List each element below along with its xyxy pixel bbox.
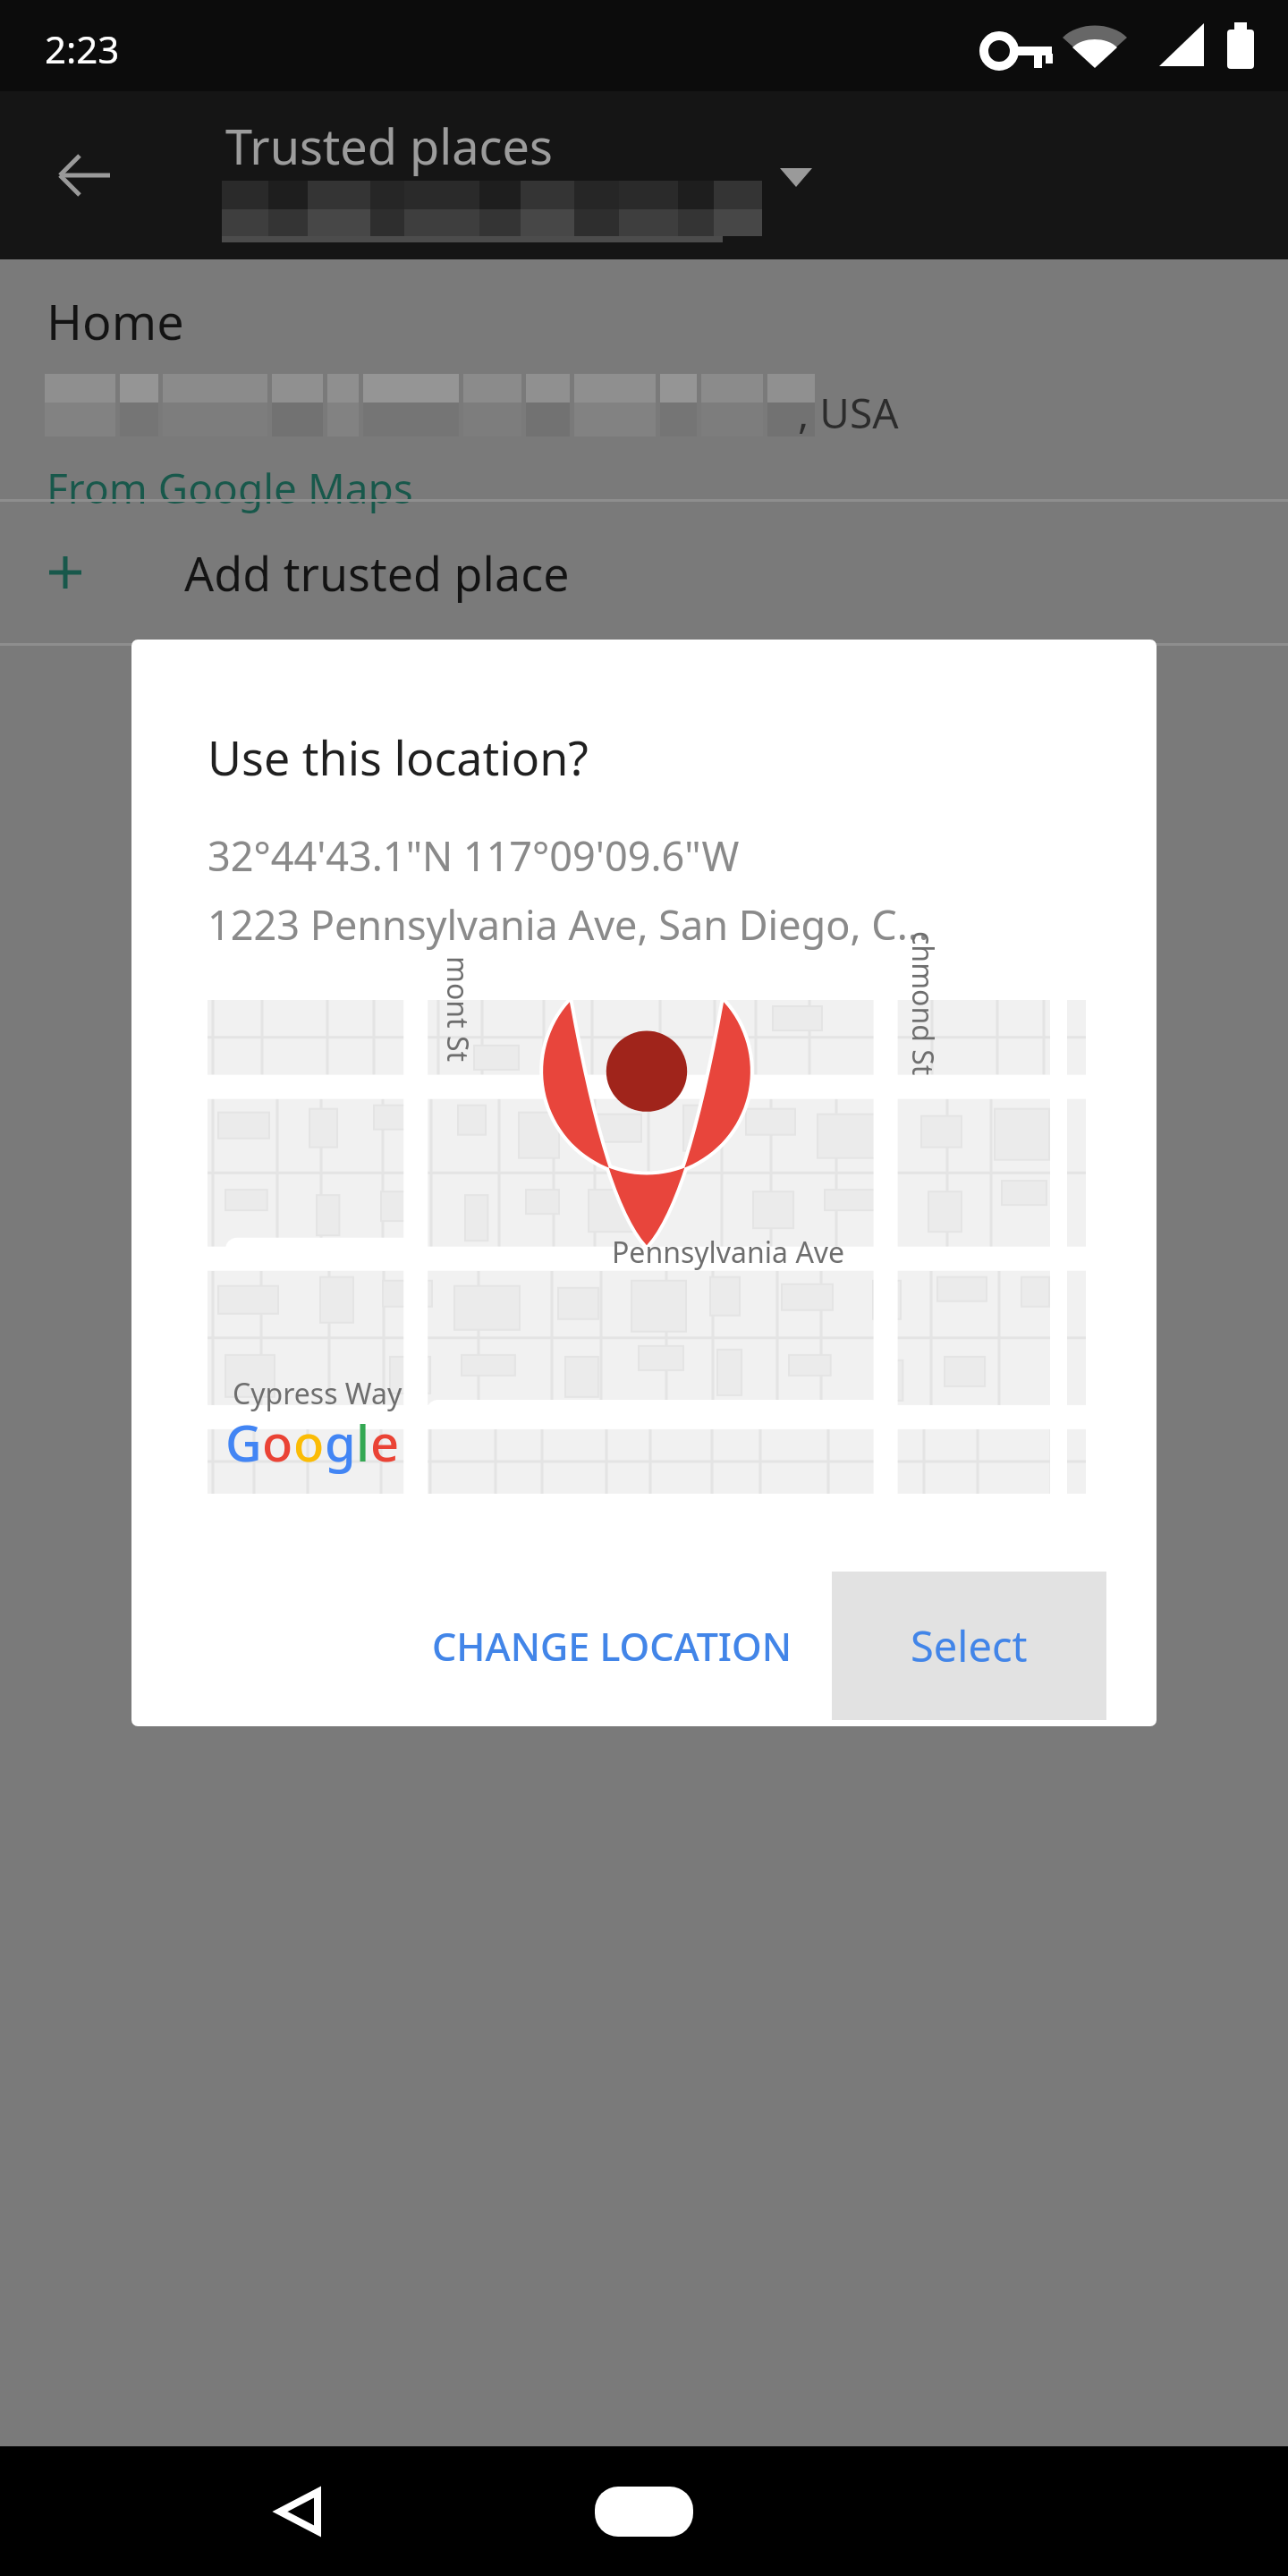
staticText: 32°44'43.1"N 117°09'09.6"W — [208, 828, 740, 883]
button[interactable]: Map preview — [208, 1000, 1086, 1494]
staticText: e — [370, 1408, 400, 1476]
button[interactable]: Select — [832, 1572, 1106, 1720]
staticText: CHANGE LOCATION — [432, 1620, 792, 1673]
staticText: Home — [47, 288, 184, 354]
button[interactable]: CHANGE LOCATION — [409, 1571, 816, 1721]
staticText: Pennsylvania Ave — [612, 1233, 845, 1272]
button[interactable]: Back — [240, 2453, 356, 2570]
button[interactable]: Home — [0, 259, 1288, 499]
staticText: Cypress Way — [233, 1374, 402, 1413]
staticText: Use this location? — [208, 725, 589, 789]
staticText: Select — [911, 1617, 1028, 1674]
staticText: mont St — [438, 956, 478, 1063]
button[interactable]: Change account — [760, 141, 832, 213]
button[interactable]: Add trusted place — [0, 502, 1288, 643]
staticText: g — [325, 1408, 356, 1476]
staticText: Add trusted place — [184, 541, 570, 605]
staticText: 2:23 — [45, 23, 120, 74]
button[interactable]: Home — [572, 2471, 716, 2552]
staticText: Trusted places — [225, 113, 553, 179]
staticText: From Google Maps — [47, 460, 413, 516]
staticText: G — [225, 1408, 262, 1476]
staticText: chmond St — [903, 931, 943, 1076]
button[interactable]: Back — [39, 131, 129, 220]
staticText: o — [262, 1408, 293, 1476]
staticText: o — [293, 1408, 325, 1476]
staticText: 1223 Pennsylvania Ave, San Diego, C... — [208, 897, 929, 952]
staticText: l — [356, 1408, 370, 1476]
staticText: , USA — [798, 385, 899, 441]
